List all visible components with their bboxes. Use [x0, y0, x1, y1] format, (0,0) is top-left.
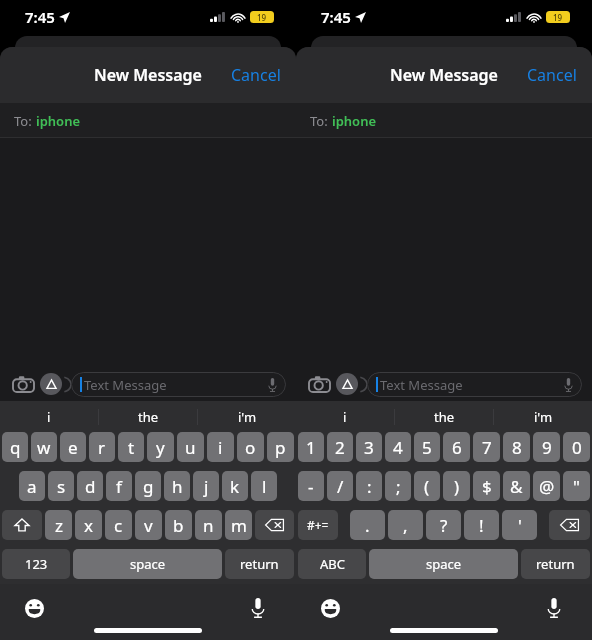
button[interactable]: :: [356, 471, 382, 501]
button[interactable]: Emoji keyboard: [20, 594, 48, 622]
button[interactable]: Cancel: [216, 52, 296, 98]
button[interactable]: f: [106, 471, 132, 501]
staticText: i: [218, 436, 223, 459]
staticText: Cancel: [527, 64, 577, 86]
staticText: iphone: [36, 112, 81, 130]
staticText: #+=: [307, 517, 329, 533]
button[interactable]: !: [464, 510, 499, 540]
staticText: ABC: [320, 555, 345, 573]
button[interactable]: ): [443, 471, 470, 501]
button[interactable]: &: [503, 471, 530, 501]
button[interactable]: To:: [296, 103, 592, 138]
button[interactable]: v: [135, 510, 162, 540]
button[interactable]: 4: [385, 432, 411, 462]
button[interactable]: x: [75, 510, 102, 540]
button[interactable]: m: [225, 510, 252, 540]
button[interactable]: Text Message: [367, 372, 582, 397]
button[interactable]: 123: [2, 549, 70, 579]
button[interactable]: Cancel: [512, 52, 592, 98]
button[interactable]: p: [267, 432, 294, 462]
button[interactable]: h: [164, 471, 190, 501]
staticText: o: [245, 436, 256, 459]
button[interactable]: q: [2, 432, 28, 462]
button[interactable]: return: [225, 549, 294, 579]
staticText: g: [143, 475, 154, 498]
staticText: z: [55, 514, 63, 537]
button[interactable]: a: [19, 471, 45, 501]
button[interactable]: 2: [327, 432, 353, 462]
button[interactable]: -: [298, 471, 324, 501]
button[interactable]: .: [350, 510, 385, 540]
staticText: Cancel: [231, 64, 281, 86]
button[interactable]: r: [89, 432, 115, 462]
button[interactable]: c: [105, 510, 132, 540]
button[interactable]: ': [502, 510, 537, 540]
button[interactable]: 5: [414, 432, 440, 462]
button[interactable]: ;: [385, 471, 411, 501]
button[interactable]: App Store: [336, 373, 358, 395]
button[interactable]: k: [222, 471, 248, 501]
button[interactable]: e: [60, 432, 86, 462]
button[interactable]: t: [118, 432, 144, 462]
button[interactable]: 9: [533, 432, 560, 462]
button[interactable]: space: [369, 549, 518, 579]
staticText: p: [275, 436, 286, 459]
button[interactable]: o: [237, 432, 264, 462]
staticText: To:: [310, 112, 332, 130]
button[interactable]: 6: [443, 432, 470, 462]
button[interactable]: Backspace: [255, 510, 294, 540]
button[interactable]: the: [99, 401, 197, 432]
button[interactable]: ABC: [298, 549, 366, 579]
button[interactable]: Backspace: [549, 510, 590, 540]
button[interactable]: i'm: [494, 401, 592, 432]
button[interactable]: Dictation: [244, 594, 272, 622]
button[interactable]: i: [0, 401, 98, 432]
staticText: 123: [25, 555, 48, 573]
staticText: !: [479, 514, 484, 537]
button[interactable]: i: [207, 432, 234, 462]
button[interactable]: #+=: [298, 510, 338, 540]
button[interactable]: (: [414, 471, 440, 501]
button[interactable]: 1: [298, 432, 324, 462]
button[interactable]: j: [193, 471, 219, 501]
button[interactable]: $: [473, 471, 500, 501]
staticText: c: [114, 514, 123, 537]
button[interactable]: i: [296, 401, 394, 432]
button[interactable]: ": [563, 471, 590, 501]
button[interactable]: 7: [473, 432, 500, 462]
button[interactable]: d: [77, 471, 103, 501]
button[interactable]: u: [177, 432, 204, 462]
button[interactable]: To:: [0, 103, 296, 138]
button[interactable]: 8: [503, 432, 530, 462]
button[interactable]: /: [327, 471, 353, 501]
staticText: ": [573, 475, 580, 498]
staticText: l: [262, 475, 267, 498]
button[interactable]: 0: [563, 432, 590, 462]
button[interactable]: Dictation: [540, 594, 568, 622]
button[interactable]: s: [48, 471, 74, 501]
button[interactable]: g: [135, 471, 161, 501]
button[interactable]: w: [31, 432, 57, 462]
button[interactable]: return: [521, 549, 590, 579]
button[interactable]: @: [533, 471, 560, 501]
button[interactable]: i'm: [198, 401, 296, 432]
button[interactable]: Emoji keyboard: [316, 594, 344, 622]
button[interactable]: l: [251, 471, 277, 501]
button[interactable]: Camera: [10, 371, 36, 397]
button[interactable]: App Store: [40, 373, 62, 395]
button[interactable]: Camera: [306, 371, 332, 397]
button[interactable]: 3: [356, 432, 382, 462]
staticText: k: [230, 475, 240, 498]
button[interactable]: Shift: [2, 510, 42, 540]
button[interactable]: ,: [388, 510, 423, 540]
button[interactable]: n: [195, 510, 222, 540]
staticText: s: [57, 475, 66, 498]
button[interactable]: Text Message: [71, 372, 286, 397]
button[interactable]: space: [73, 549, 222, 579]
button[interactable]: b: [165, 510, 192, 540]
button[interactable]: the: [395, 401, 493, 432]
button[interactable]: ?: [426, 510, 461, 540]
staticText: ?: [440, 514, 448, 537]
button[interactable]: z: [45, 510, 72, 540]
button[interactable]: y: [147, 432, 174, 462]
